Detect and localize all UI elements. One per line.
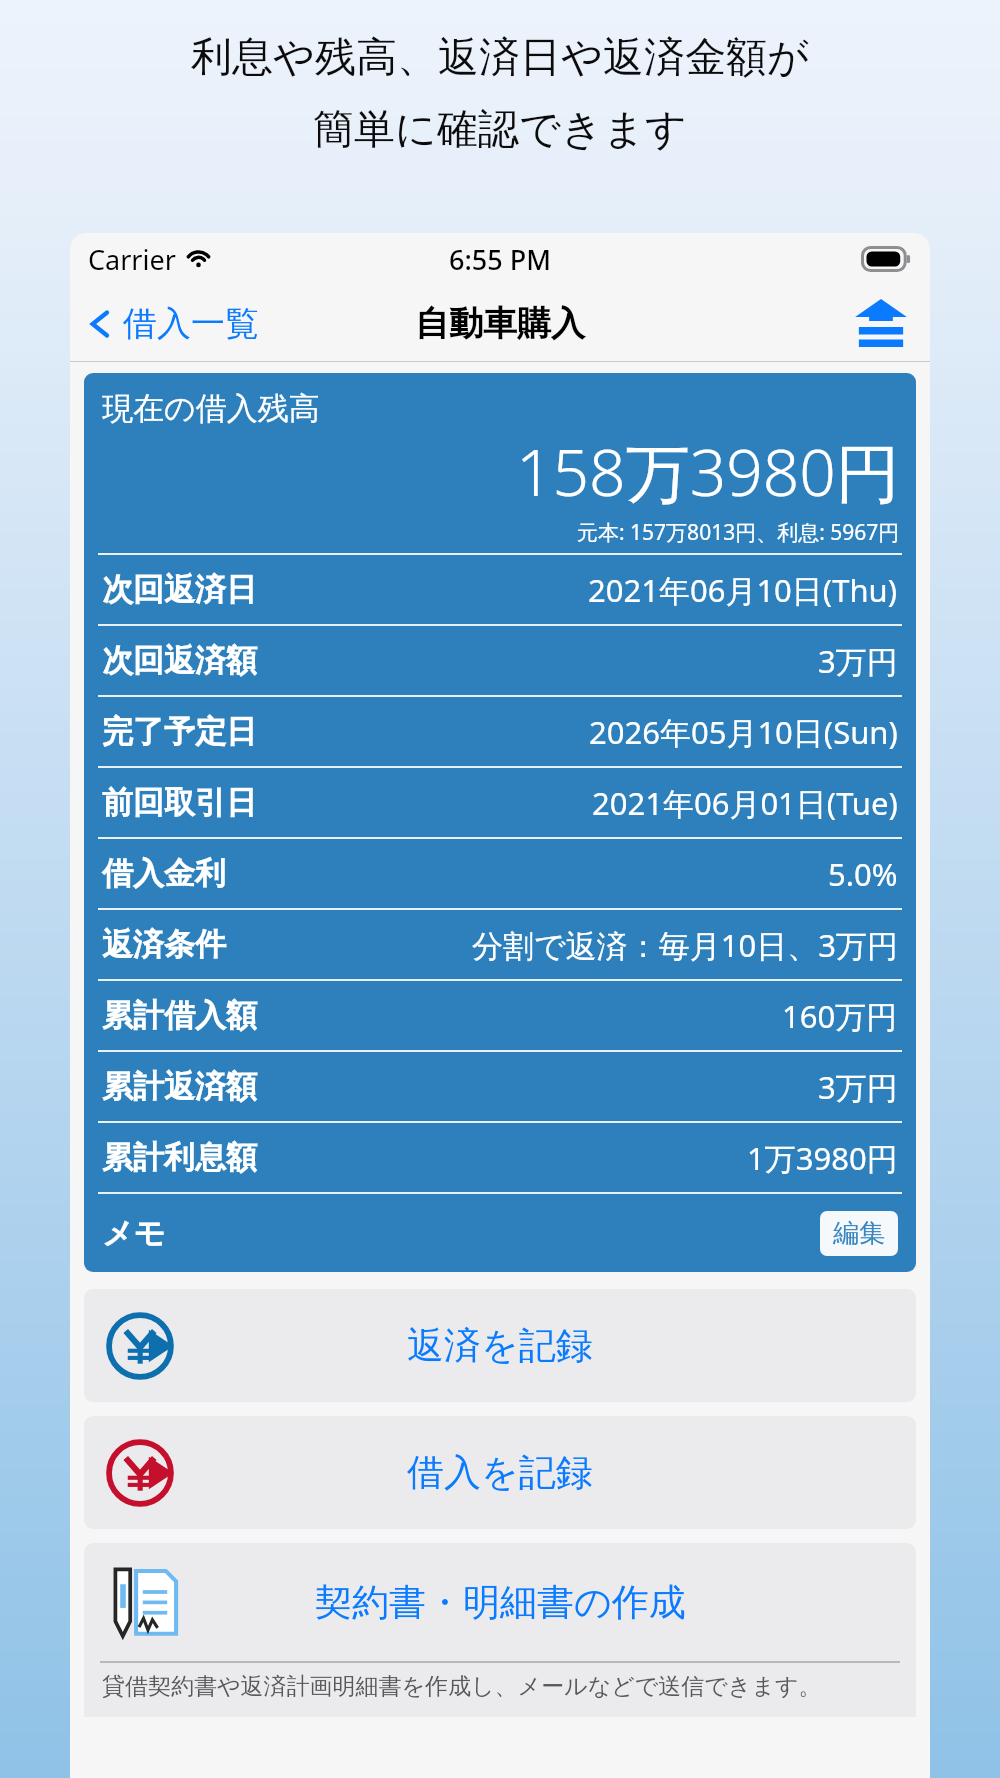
staticText: 分割で返済：毎月10日、3万円 <box>472 924 898 966</box>
staticText: メモ <box>102 1214 166 1253</box>
staticText: 契約書・明細書の作成 <box>315 1579 686 1626</box>
button[interactable]: 編集 <box>820 1211 898 1256</box>
staticText: 160万円 <box>782 995 898 1037</box>
staticText: 返済条件 <box>102 925 226 964</box>
button[interactable]: 累計借入額 <box>84 981 916 1050</box>
staticText: 2021年06月10日(Thu) <box>588 569 898 611</box>
button[interactable]: 次回返済額 <box>84 626 916 695</box>
button[interactable]: 返済を記録 <box>84 1289 916 1402</box>
staticText: 6:55 PM <box>449 241 551 278</box>
staticText: 借入金利 <box>102 854 226 893</box>
staticText: 累計借入額 <box>102 996 257 1035</box>
staticText: 2026年05月10日(Sun) <box>589 711 898 753</box>
button[interactable]: 累計返済額 <box>84 1052 916 1121</box>
staticText: 簡単に確認できます <box>0 104 1000 156</box>
staticText: 2021年06月01日(Tue) <box>592 782 898 824</box>
button[interactable]: 契約書・明細書の作成 <box>84 1543 916 1661</box>
staticText: 158万3980円 <box>516 428 900 515</box>
button[interactable]: 完了予定日 <box>84 697 916 766</box>
staticText: 完了予定日 <box>102 712 257 751</box>
staticText: 借入一覧 <box>123 302 259 345</box>
staticText: 3万円 <box>818 640 898 682</box>
staticText: 1万3980円 <box>747 1137 898 1179</box>
staticText: 次回返済額 <box>102 641 257 680</box>
staticText: 借入を記録 <box>407 1449 593 1496</box>
staticText: 自動車購入 <box>415 302 585 345</box>
staticText: 累計返済額 <box>102 1067 257 1106</box>
staticText: 次回返済日 <box>102 570 257 609</box>
button[interactable]: 借入を記録 <box>84 1416 916 1529</box>
button[interactable]: 借入一覧 <box>70 294 271 353</box>
button[interactable]: 次回返済日 <box>84 555 916 624</box>
button[interactable]: 累計利息額 <box>84 1123 916 1192</box>
button[interactable]: 借入金利 <box>84 839 916 908</box>
staticText: 前回取引日 <box>102 783 257 822</box>
staticText: 貸借契約書や返済計画明細書を作成し、メールなどで送信できます。 <box>102 1672 822 1701</box>
staticText: 現在の借入残高 <box>102 389 320 428</box>
staticText: Carrier <box>88 241 176 278</box>
staticText: 利息や残高、返済日や返済金額が <box>0 32 1000 84</box>
button[interactable]: Share <box>836 289 930 359</box>
button[interactable]: 返済条件 <box>84 910 916 979</box>
staticText: 5.0% <box>828 853 898 895</box>
staticText: 累計利息額 <box>102 1138 257 1177</box>
staticText: 編集 <box>833 1217 885 1250</box>
staticText: 元本: 157万8013円、利息: 5967円 <box>577 518 900 547</box>
button[interactable]: 前回取引日 <box>84 768 916 837</box>
staticText: 3万円 <box>818 1066 898 1108</box>
staticText: 返済を記録 <box>407 1322 593 1369</box>
